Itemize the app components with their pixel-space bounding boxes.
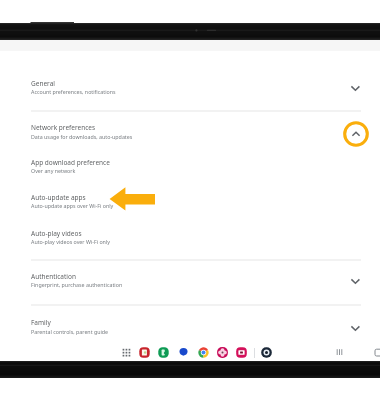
button[interactable]: All apps (121, 347, 132, 358)
button[interactable]: Office (139, 347, 150, 358)
button[interactable]: Camera (261, 347, 272, 358)
staticText: General (31, 79, 55, 88)
button[interactable] (24, 74, 356, 97)
button[interactable]: YouTube (236, 347, 247, 358)
button[interactable]: Chrome (198, 347, 209, 358)
button[interactable] (24, 267, 356, 290)
button[interactable]: Expand Family (345, 318, 365, 338)
button[interactable]: Messages (158, 347, 169, 358)
staticText: Over any network (31, 167, 76, 174)
staticText: Account preferences, notifications (31, 88, 116, 95)
staticText: Family (31, 318, 51, 327)
button[interactable]: Recent apps (333, 346, 345, 358)
staticText: Auto-play videos (31, 229, 82, 238)
staticText: Data usage for downloads, auto-updates (31, 133, 133, 140)
staticText: Auto-update apps (31, 193, 86, 202)
staticText: Auto-play videos over Wi-Fi only (31, 238, 110, 245)
button[interactable]: Expand Authentication (345, 271, 365, 291)
button[interactable]: Home (373, 346, 380, 360)
button[interactable] (24, 118, 356, 141)
button[interactable] (24, 153, 356, 176)
staticText: Auto-update apps over Wi-Fi only (31, 202, 114, 209)
button[interactable] (24, 224, 356, 247)
button[interactable]: Meet (178, 346, 189, 357)
button[interactable]: Photos (217, 347, 228, 358)
staticText: Network preferences (31, 123, 96, 132)
staticText: Parental controls, parent guide (31, 328, 109, 335)
button[interactable]: Collapse network preferences (342, 120, 370, 148)
staticText: App download preference (31, 158, 110, 167)
staticText: Fingerprint, purchase authentication (31, 281, 123, 288)
button[interactable]: Expand General (345, 78, 365, 98)
staticText: Authentication (31, 272, 76, 281)
button[interactable] (24, 313, 356, 336)
button[interactable] (24, 188, 356, 211)
